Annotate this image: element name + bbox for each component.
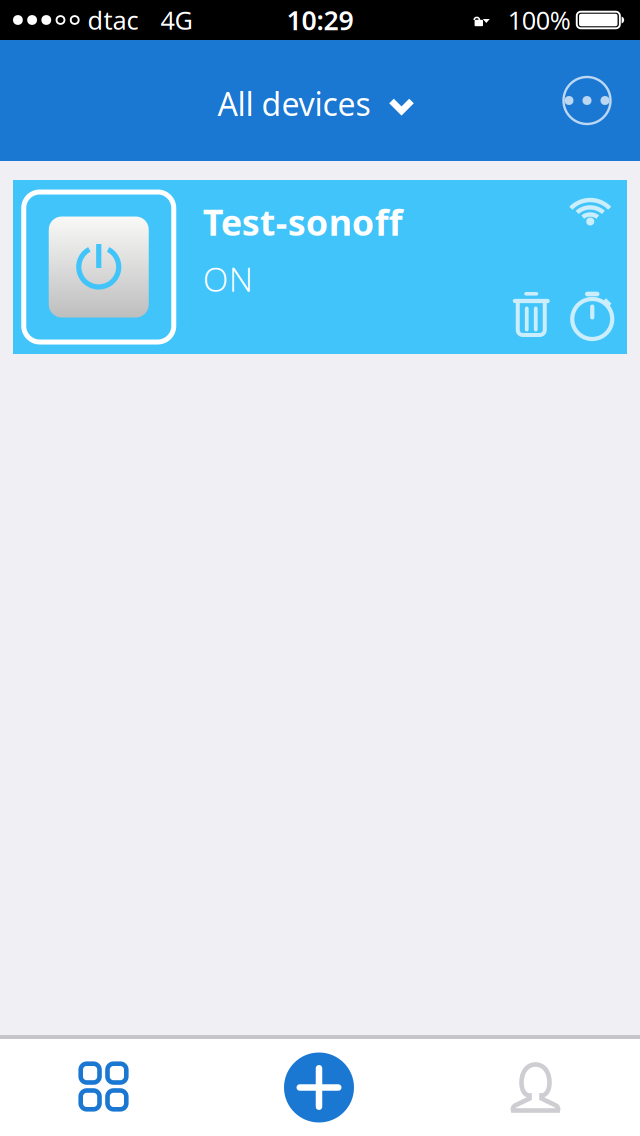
staticText: Test-sonoff <box>203 198 403 246</box>
button[interactable]: Delete device <box>512 291 550 337</box>
staticText: 4G <box>161 3 193 37</box>
button[interactable]: Toggle Test-sonoff power <box>24 192 174 342</box>
staticText: ON <box>203 257 253 301</box>
staticText: All devices <box>217 82 370 125</box>
staticText: dtac <box>88 3 139 37</box>
button[interactable]: More options <box>552 65 622 135</box>
button[interactable]: Schedule timer <box>572 289 616 339</box>
staticText: 100% <box>508 3 571 37</box>
button[interactable]: All devices <box>199 54 432 146</box>
button[interactable]: Devices <box>0 1039 213 1136</box>
button[interactable]: Add device <box>213 1039 427 1136</box>
button[interactable]: Profile <box>427 1039 640 1136</box>
staticText: 10:29 <box>286 2 353 38</box>
